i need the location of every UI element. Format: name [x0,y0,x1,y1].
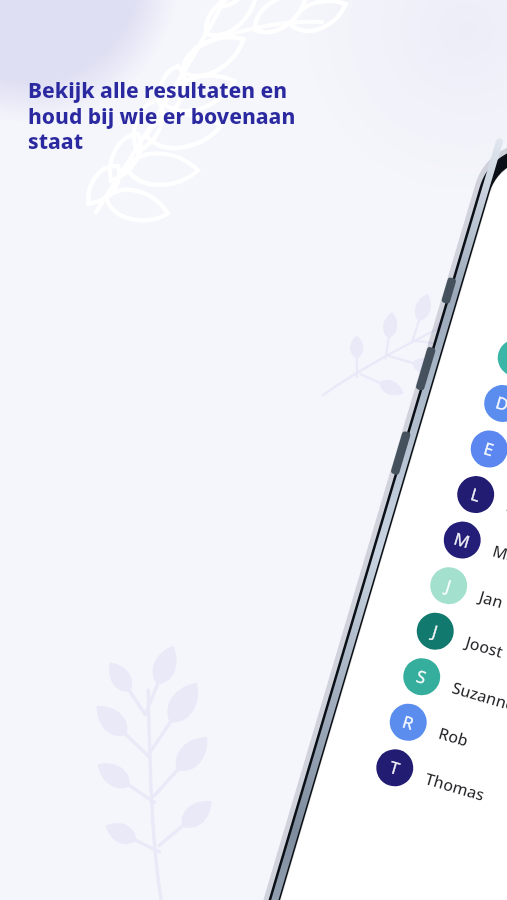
button[interactable]: Bekijk alle resultaten en houd bij wie e… [0,0,507,900]
